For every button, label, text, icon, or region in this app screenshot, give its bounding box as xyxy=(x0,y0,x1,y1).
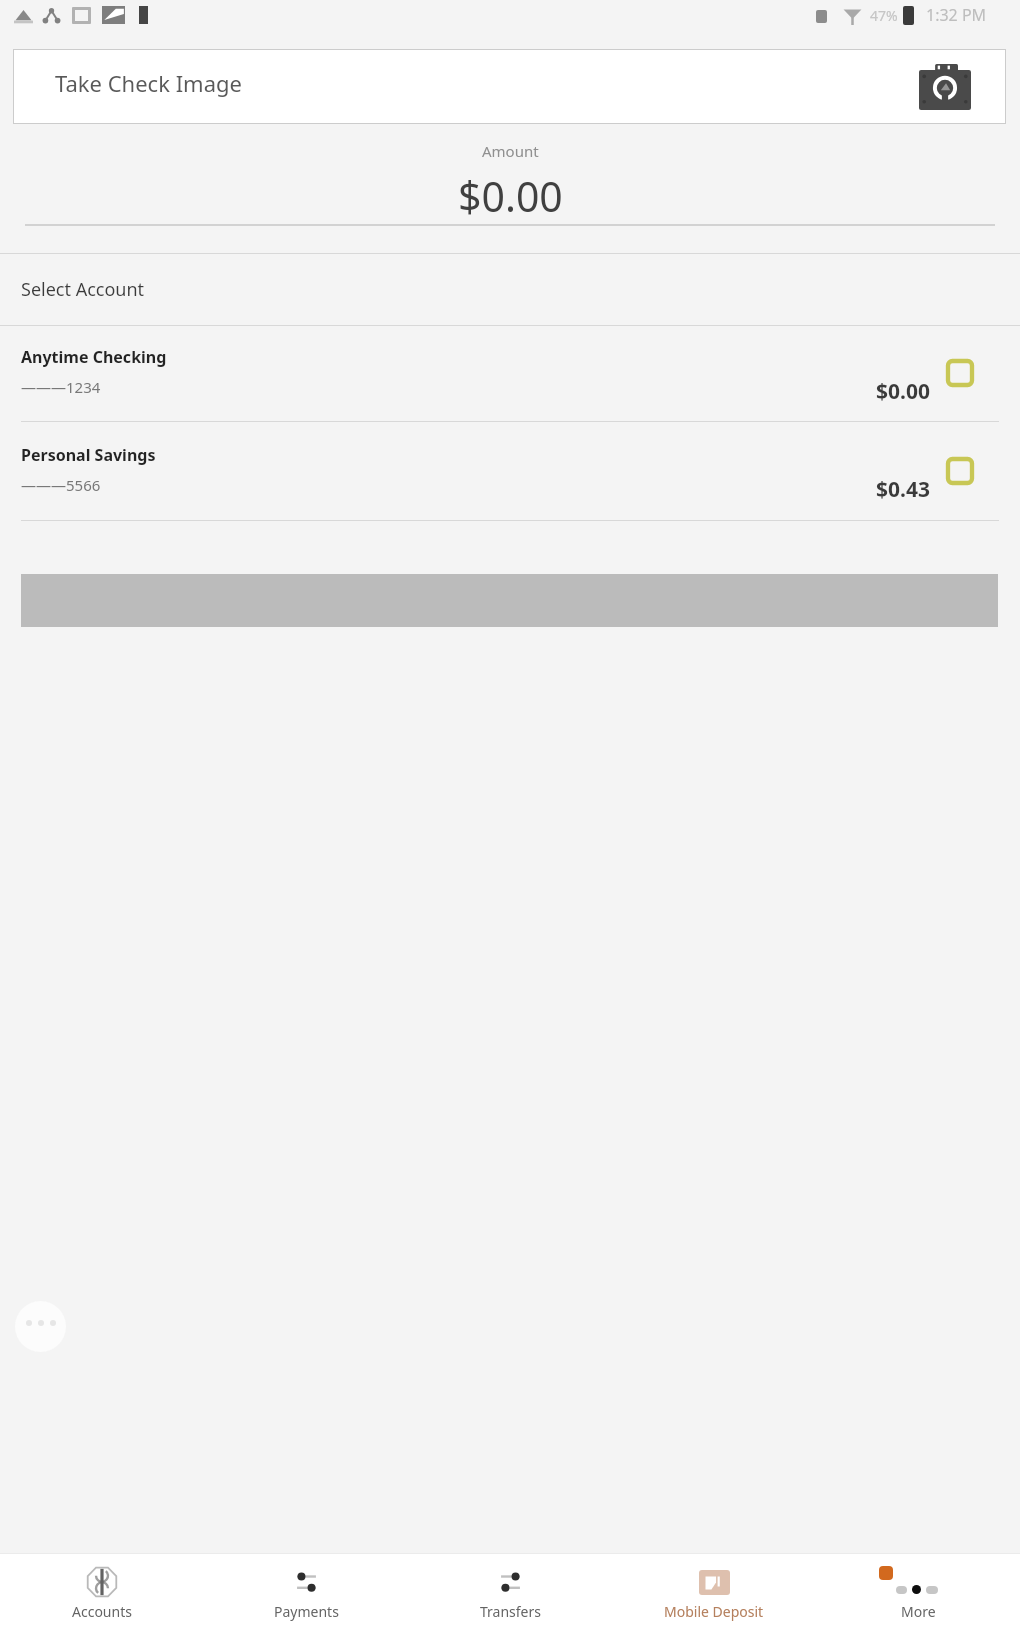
staticText: Personal Savings xyxy=(21,444,156,466)
staticText: 47% xyxy=(870,6,898,25)
button[interactable]: Take Check Image xyxy=(13,49,1006,124)
staticText: Transfers xyxy=(480,1602,541,1621)
staticText: Take Check Image xyxy=(55,68,242,98)
staticText: $0.43 xyxy=(876,475,930,504)
button[interactable]: Anytime Checking xyxy=(0,326,1020,422)
button[interactable]: Mobile Deposit xyxy=(612,1554,816,1632)
button[interactable]: Accounts xyxy=(0,1554,204,1632)
staticText: Anytime Checking xyxy=(21,346,167,368)
button[interactable]: Transfers xyxy=(408,1554,612,1632)
button[interactable]: Select Account xyxy=(0,254,1020,325)
staticText: Accounts xyxy=(72,1602,132,1621)
staticText: Amount xyxy=(482,141,539,161)
staticText: $0.00 xyxy=(458,168,563,224)
button[interactable]: More options xyxy=(15,1301,66,1352)
staticText: ———5566 xyxy=(21,475,101,495)
staticText: Payments xyxy=(274,1602,339,1621)
staticText: Mobile Deposit xyxy=(664,1602,764,1621)
button[interactable]: Take photo of check xyxy=(919,64,971,110)
staticText: Select Account xyxy=(21,277,145,302)
staticText: ———1234 xyxy=(21,377,101,397)
button[interactable]: Payments xyxy=(204,1554,408,1632)
staticText: 1:32 PM xyxy=(926,4,987,26)
button[interactable]: Personal Savings xyxy=(0,422,1020,521)
staticText: $0.00 xyxy=(876,377,930,406)
staticText: More xyxy=(901,1602,936,1621)
button[interactable]: More xyxy=(816,1554,1020,1632)
